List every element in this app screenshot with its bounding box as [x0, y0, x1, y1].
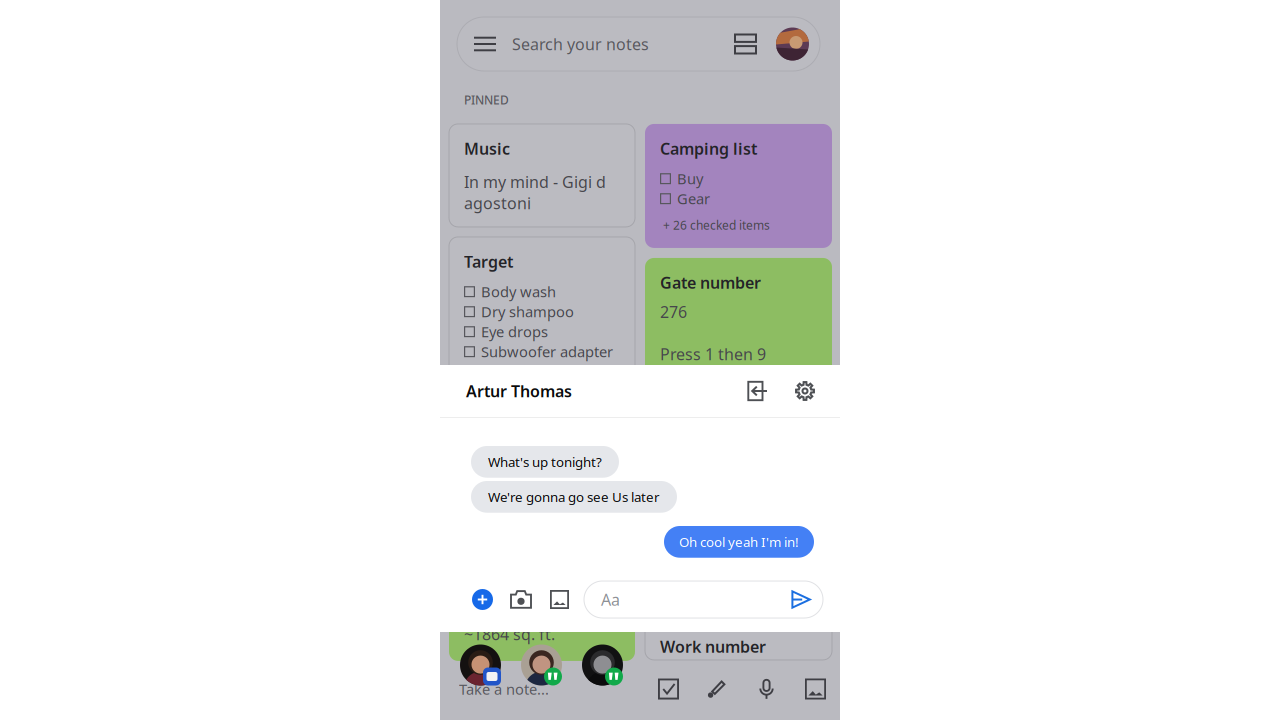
button[interactable]: Chat head [582, 644, 623, 685]
staticText: Buy [677, 169, 703, 188]
button[interactable]: Gate number [645, 258, 832, 612]
staticText: In my mind - Gigi d agostoni [464, 171, 606, 214]
staticText: Subwoofer adapter [481, 342, 613, 361]
staticText: Gate number [660, 272, 761, 293]
button[interactable]: More actions [472, 589, 493, 610]
staticText: Eye drops [481, 322, 548, 341]
staticText: Aa [601, 589, 620, 610]
staticText: Work number [660, 636, 766, 657]
staticText: Hand soap [481, 442, 555, 461]
staticText: 2 bed / 1 bath [464, 582, 568, 603]
button[interactable]: New voice note [757, 677, 776, 700]
staticText: Target [464, 251, 513, 272]
button[interactable]: Work number [645, 622, 832, 660]
staticText: Gear [677, 189, 710, 208]
button[interactable]: New apartment [449, 535, 635, 661]
button[interactable]: Chat head [460, 644, 501, 685]
staticText: Press 1 then 9 [660, 343, 766, 365]
staticText: Body wash [481, 282, 556, 301]
staticText: Paper towels [481, 462, 570, 481]
staticText: Music [464, 138, 510, 159]
staticText: 276 [660, 301, 687, 322]
staticText: Dry shampoo [481, 302, 574, 321]
staticText: ~1864 sq. ft. [464, 623, 555, 645]
button[interactable]: Target [449, 237, 635, 525]
staticText: Camping list [660, 138, 757, 159]
staticText: We're gonna go see Us later [488, 488, 660, 506]
button[interactable]: Chat head [521, 644, 562, 685]
staticText: Shaving cream [481, 362, 582, 381]
button[interactable]: Camping list [645, 124, 832, 248]
staticText: Search your notes [512, 33, 649, 55]
staticText: Artur Thomas [466, 380, 572, 402]
button[interactable]: Open in Messenger [747, 380, 768, 401]
button[interactable]: Photos [550, 590, 569, 609]
button[interactable]: New photo note [805, 678, 826, 699]
button[interactable]: Chat settings [794, 380, 816, 402]
staticText: + 26 checked items [663, 217, 770, 233]
button[interactable]: Camera [510, 590, 532, 609]
button[interactable]: Send [791, 590, 811, 609]
button[interactable]: New list [658, 678, 679, 699]
staticText: Take a note... [459, 679, 549, 699]
button[interactable]: Search your notes [457, 17, 820, 71]
staticText: PINNED [464, 92, 509, 108]
staticText: What's up tonight? [488, 453, 602, 471]
staticText: Razors [481, 382, 527, 401]
staticText: Oh cool yeah I'm in! [679, 533, 799, 551]
staticText: Shower curtain [481, 402, 585, 421]
button[interactable]: Music [449, 124, 635, 227]
button[interactable]: New drawing [705, 677, 728, 700]
